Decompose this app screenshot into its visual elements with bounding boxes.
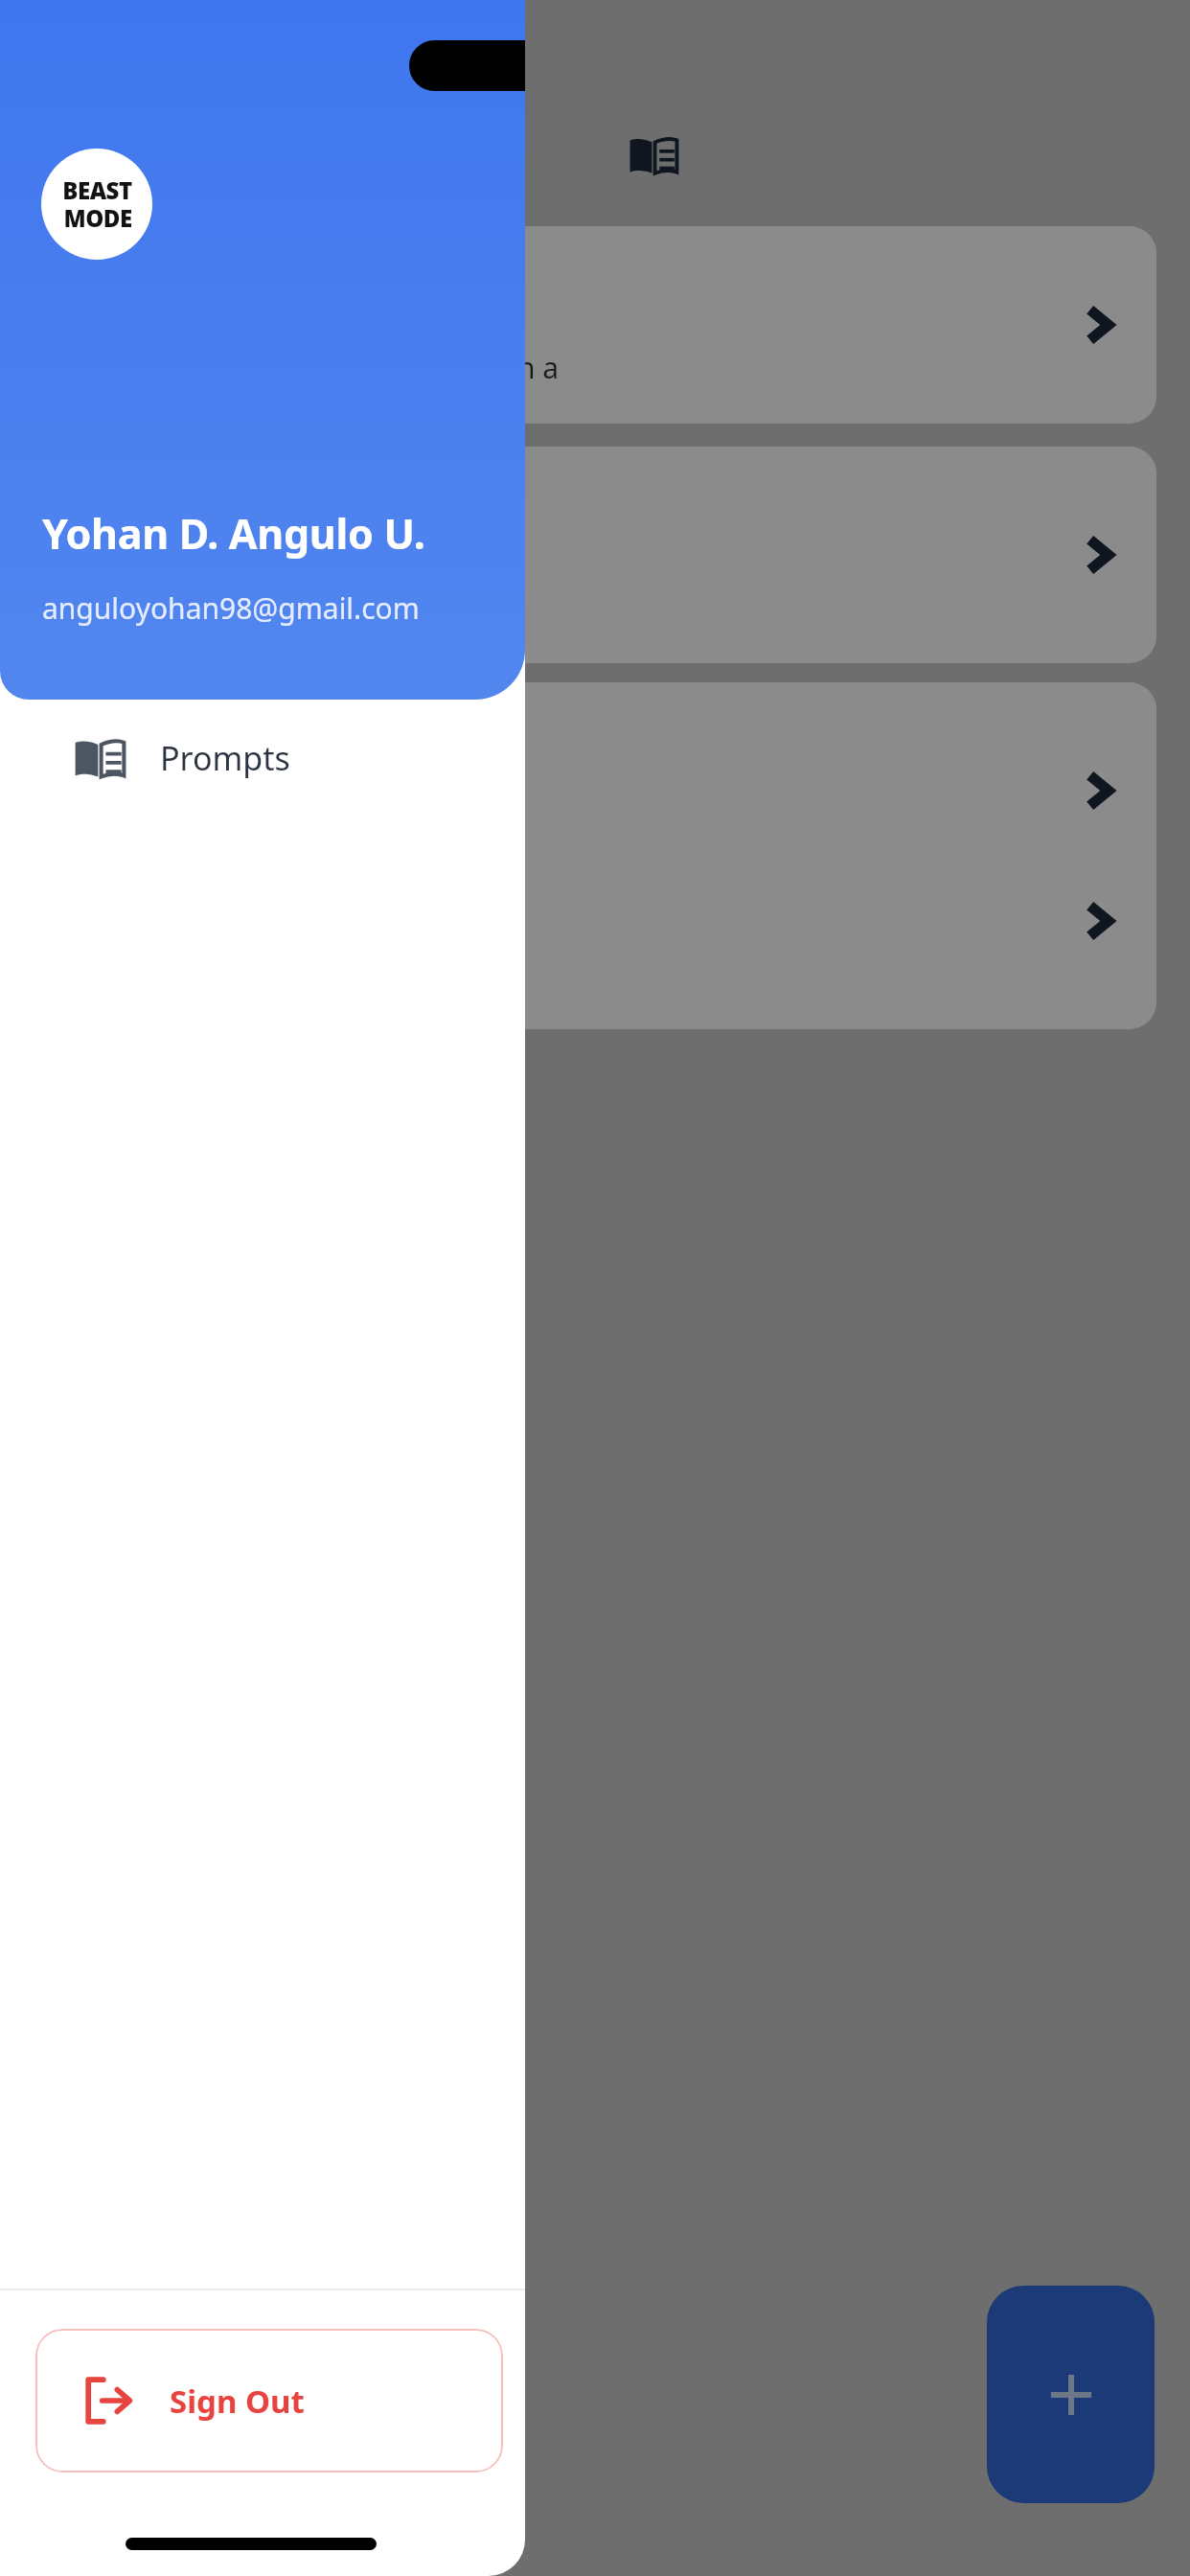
staticText: MODE [63,202,132,234]
staticText: Prompts [160,736,290,780]
staticText: anguloyohan98@gmail.com [42,588,420,628]
button[interactable]: n a [412,226,1156,424]
staticText: Sign Out [170,2380,305,2423]
button[interactable]: Profile photo [41,149,152,260]
button[interactable] [412,813,1156,1029]
button[interactable]: Sign Out [35,2329,503,2472]
button[interactable]: Prompts [0,700,525,816]
button[interactable] [412,682,1156,899]
staticText: n a [517,348,560,387]
button[interactable]: Prompts [619,121,688,190]
staticText: BEAST [62,174,132,206]
button[interactable]: Add [987,2286,1155,2503]
button[interactable] [412,447,1156,663]
staticText: Yohan D. Angulo U. [42,505,425,562]
